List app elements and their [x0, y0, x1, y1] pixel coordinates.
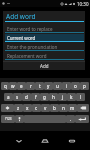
- button[interactable]: Recent apps: [64, 133, 80, 149]
- button[interactable]: r: [26, 82, 35, 90]
- staticText: m: [70, 105, 75, 111]
- button[interactable]: z: [14, 104, 23, 112]
- staticText: d: [25, 94, 28, 100]
- button[interactable]: Enter word to replace: [5, 25, 84, 32]
- button[interactable]: b: [50, 104, 59, 112]
- button[interactable]: s: [13, 93, 22, 101]
- button[interactable]: u: [53, 82, 62, 90]
- button[interactable]: m: [68, 104, 77, 112]
- button[interactable]: w: [9, 82, 17, 90]
- staticText: e: [20, 83, 23, 89]
- button[interactable]: Enter: [75, 115, 89, 123]
- button[interactable]: t: [35, 82, 44, 90]
- staticText: t: [39, 83, 41, 89]
- staticText: Enter the pronunciation: [7, 44, 58, 50]
- button[interactable]: ?123: [1, 115, 15, 123]
- button[interactable]: .: [66, 115, 75, 123]
- staticText: b: [53, 105, 56, 111]
- button[interactable]: c: [32, 104, 41, 112]
- button[interactable]: p: [80, 82, 89, 90]
- button[interactable]: q: [1, 82, 9, 90]
- staticText: c: [35, 105, 38, 111]
- staticText: k: [70, 94, 73, 100]
- staticText: v: [44, 105, 47, 111]
- staticText: o: [74, 83, 77, 89]
- button[interactable]: Enter the pronunciation: [5, 43, 84, 50]
- staticText: f: [35, 94, 37, 100]
- staticText: a: [7, 94, 10, 100]
- staticText: x: [26, 105, 29, 111]
- button[interactable]: l: [76, 93, 85, 101]
- staticText: .: [70, 116, 72, 122]
- button[interactable]: g: [40, 93, 49, 101]
- button[interactable]: Voice input: [15, 115, 24, 123]
- button[interactable]: h: [49, 93, 58, 101]
- staticText: j: [62, 94, 64, 100]
- staticText: u: [56, 83, 59, 89]
- staticText: l: [80, 94, 82, 100]
- button[interactable]: Add: [3, 62, 85, 70]
- staticText: w: [11, 83, 15, 89]
- button[interactable]: i: [62, 82, 71, 90]
- button[interactable]: x: [23, 104, 32, 112]
- button[interactable]: Current word: [5, 34, 84, 41]
- staticText: z: [17, 105, 20, 111]
- staticText: 10:30: [77, 1, 89, 7]
- staticText: Add word: [6, 12, 36, 21]
- staticText: h: [52, 94, 55, 100]
- staticText: i: [66, 83, 68, 89]
- button[interactable]: j: [58, 93, 67, 101]
- staticText: Replacement word: [7, 53, 47, 59]
- button[interactable]: Home: [37, 133, 53, 149]
- staticText: s: [16, 94, 19, 100]
- staticText: y: [47, 83, 50, 89]
- button[interactable]: Backspace: [77, 104, 89, 112]
- button[interactable]: n: [59, 104, 68, 112]
- staticText: ?123: [5, 117, 12, 121]
- button[interactable]: y: [44, 82, 53, 90]
- staticText: g: [43, 94, 46, 100]
- button[interactable]: o: [71, 82, 80, 90]
- button[interactable]: e: [17, 82, 26, 90]
- staticText: q: [4, 83, 7, 89]
- button[interactable]: d: [22, 93, 31, 101]
- button[interactable]: a: [4, 93, 13, 101]
- staticText: p: [83, 83, 86, 89]
- staticText: n: [62, 105, 65, 111]
- staticText: Enter word to replace: [7, 26, 53, 32]
- staticText: r: [30, 83, 32, 89]
- staticText: Current word: [7, 35, 36, 41]
- button[interactable]: k: [67, 93, 76, 101]
- button[interactable]: Shift: [1, 104, 14, 112]
- staticText: Add: [40, 63, 49, 69]
- button[interactable]: f: [31, 93, 40, 101]
- button[interactable]: v: [41, 104, 50, 112]
- button[interactable]: Replacement word: [5, 52, 84, 59]
- button[interactable]: Back: [11, 133, 27, 149]
